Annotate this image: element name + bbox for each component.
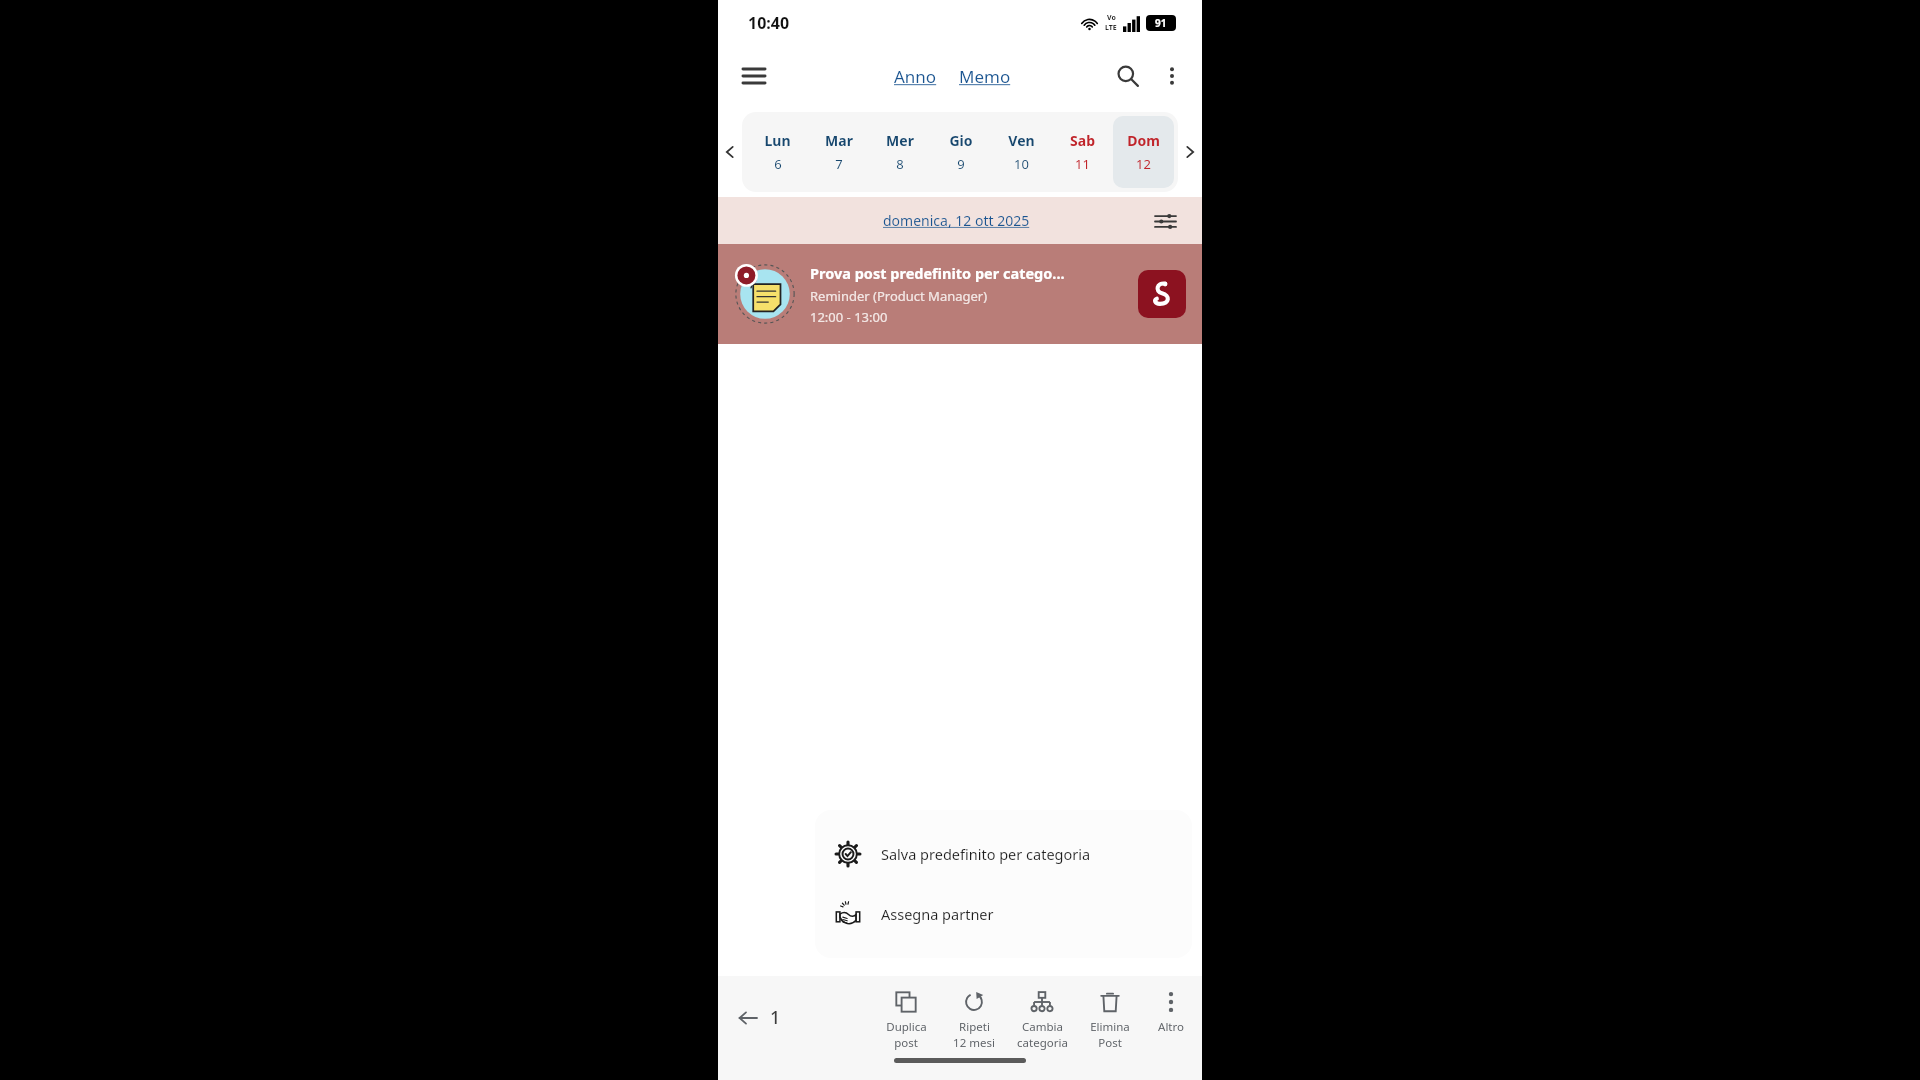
staticText: Vo	[1107, 13, 1116, 23]
staticText: Mar	[825, 131, 853, 150]
staticText: 9	[957, 155, 965, 173]
staticText: Reminder (Product Manager)	[810, 287, 988, 305]
button[interactable]: Menu	[732, 54, 776, 98]
button[interactable]: Mar	[808, 116, 869, 188]
button[interactable]: Ripeti	[940, 983, 1008, 1051]
staticText: Gio	[949, 131, 973, 150]
staticText: Duplica	[886, 1019, 927, 1035]
staticText: Cambia	[1022, 1019, 1063, 1035]
staticText: Prova post predefinito per catego...	[810, 263, 1065, 283]
button[interactable]: Anno	[894, 65, 937, 88]
staticText: 91	[1155, 16, 1167, 30]
button[interactable]: Sab	[1052, 116, 1113, 188]
staticText: Mer	[886, 131, 914, 150]
staticText: Altro	[1158, 1019, 1184, 1035]
button[interactable]: Back, 1 selected	[730, 999, 789, 1036]
staticText: Elimina	[1090, 1019, 1130, 1035]
staticText: Ripeti	[959, 1019, 990, 1035]
staticText: Ven	[1008, 131, 1035, 150]
staticText: Lun	[764, 131, 791, 150]
button[interactable]: Duplica	[872, 983, 940, 1051]
staticText: categoria	[1017, 1035, 1068, 1051]
button[interactable]: Previous week	[718, 107, 742, 197]
button[interactable]: Mer	[869, 116, 930, 188]
staticText: 10:40	[748, 12, 790, 34]
button[interactable]: Elimina	[1076, 983, 1144, 1051]
button[interactable]: More options	[1150, 54, 1194, 98]
staticText: 1	[770, 1005, 781, 1030]
staticText: 10	[1014, 155, 1029, 173]
staticText: Sab	[1070, 131, 1095, 150]
staticText: Dom	[1127, 131, 1160, 150]
staticText: 7	[835, 155, 843, 173]
staticText: 6	[774, 155, 782, 173]
staticText: 8	[896, 155, 904, 173]
staticText: 11	[1075, 155, 1090, 173]
button[interactable]: Lun	[746, 116, 808, 188]
button[interactable]: Category icon	[1138, 270, 1186, 318]
button[interactable]: Next week	[1178, 107, 1202, 197]
staticText: Post	[1098, 1035, 1122, 1051]
button[interactable]: Ven	[991, 116, 1052, 188]
staticText: 12:00 - 13:00	[810, 308, 888, 326]
button[interactable]: Cambia	[1008, 983, 1076, 1051]
staticText: LTE	[1105, 23, 1117, 33]
button[interactable]: Altro	[1144, 983, 1198, 1035]
staticText: Salva predefinito per categoria	[881, 844, 1091, 864]
button[interactable]: Filter	[1148, 204, 1182, 238]
staticText: Assegna partner	[881, 904, 994, 924]
button[interactable]: Salva predefinito per categoria	[815, 832, 1192, 876]
button[interactable]: Memo	[959, 65, 1011, 88]
button[interactable]: Dom	[1113, 116, 1174, 188]
staticText: 12 mesi	[953, 1035, 995, 1051]
button[interactable]: Prova post predefinito per catego...	[718, 244, 1202, 344]
staticText: 12	[1136, 155, 1151, 173]
button[interactable]: Gio	[930, 116, 991, 188]
button[interactable]: domenica, 12 ott 2025	[883, 211, 1030, 230]
staticText: post	[894, 1035, 918, 1051]
button[interactable]: Search	[1106, 54, 1150, 98]
button[interactable]: Assegna partner	[815, 892, 1192, 936]
